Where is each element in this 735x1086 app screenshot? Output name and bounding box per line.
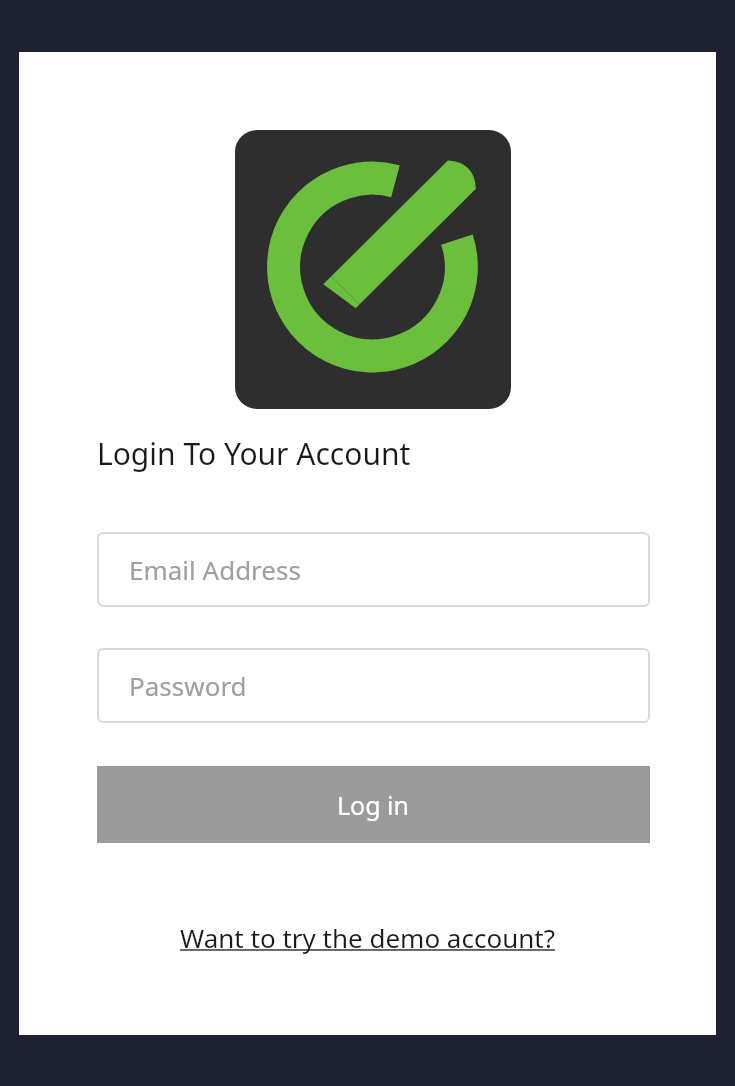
staticText: Password <box>129 668 247 703</box>
button[interactable]: Want to try the demo account? <box>176 914 559 961</box>
other: App logo <box>235 130 511 409</box>
button[interactable]: Password <box>97 648 650 723</box>
staticText: Log in <box>337 788 410 822</box>
button[interactable]: Email Address <box>97 532 650 607</box>
staticText: Login To Your Account <box>97 433 411 474</box>
staticText: Want to try the demo account? <box>180 920 555 955</box>
staticText: Email Address <box>129 552 301 587</box>
button[interactable]: Log in <box>97 766 650 843</box>
